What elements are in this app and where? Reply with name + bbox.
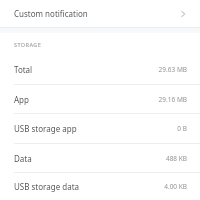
staticText: App	[14, 94, 29, 105]
button[interactable]: App	[0, 85, 200, 113]
staticText: 4.00 KB	[164, 182, 187, 191]
other: Open custom notification	[178, 8, 190, 20]
staticText: 29.16 MB	[158, 95, 187, 104]
staticText: USB storage app	[14, 123, 77, 134]
button[interactable]: Custom notification	[0, 0, 200, 27]
button[interactable]: USB storage data	[0, 173, 200, 200]
staticText: STORAGE	[14, 41, 42, 48]
staticText: 0 B	[177, 124, 187, 133]
staticText: Data	[14, 153, 32, 164]
staticText: Total	[14, 64, 33, 75]
staticText: 29.63 MB	[158, 65, 187, 74]
staticText: USB storage data	[14, 181, 80, 192]
button[interactable]: Data	[0, 144, 200, 172]
staticText: Custom notification	[14, 8, 88, 19]
button[interactable]: USB storage app	[0, 114, 200, 143]
staticText: 488 KB	[165, 154, 187, 163]
button[interactable]: Total	[0, 55, 200, 84]
